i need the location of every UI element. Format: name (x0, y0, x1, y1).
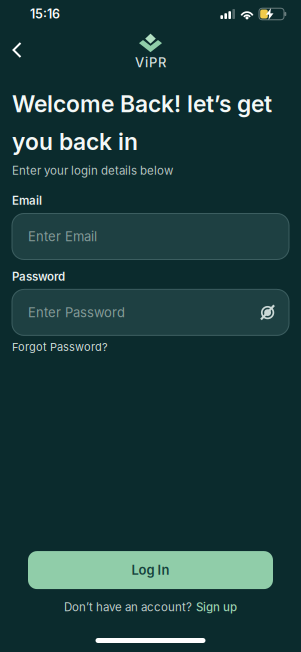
button[interactable]: Sign up (196, 600, 237, 614)
staticText: Enter your login details below (12, 164, 173, 178)
button[interactable]: Show Password (258, 303, 289, 322)
button[interactable]: Enter Password (12, 289, 289, 335)
button[interactable]: Forgot Password? (12, 340, 108, 354)
staticText: ViPR (135, 55, 166, 70)
staticText: Forgot Password? (12, 340, 108, 354)
staticText: 15:16 (30, 6, 60, 21)
button[interactable]: Enter Email (12, 213, 289, 259)
button[interactable]: Back (0, 34, 22, 66)
button[interactable]: Log In (28, 551, 273, 589)
staticText: Log In (131, 562, 169, 578)
staticText: Don’t have an account? (64, 600, 192, 614)
staticText: you back in (12, 128, 138, 156)
staticText: Email (12, 194, 42, 207)
staticText: Enter Email (28, 229, 97, 244)
staticText: Sign up (196, 600, 237, 614)
staticText: Enter Password (28, 304, 125, 320)
staticText: Welcome Back! let’s get (12, 90, 272, 118)
staticText: Password (12, 269, 65, 283)
